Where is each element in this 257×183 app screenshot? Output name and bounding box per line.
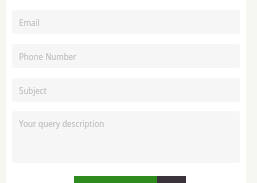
staticText: Subject: [19, 85, 47, 96]
staticText: Your query description: [19, 118, 105, 129]
staticText: Email: [19, 17, 40, 28]
button[interactable]: [74, 176, 186, 183]
button[interactable]: Subject: [12, 78, 240, 102]
button[interactable]: Your query description: [12, 111, 240, 163]
button[interactable]: Phone Number: [12, 44, 240, 68]
button[interactable]: Email: [12, 10, 240, 34]
staticText: Phone Number: [19, 51, 77, 62]
